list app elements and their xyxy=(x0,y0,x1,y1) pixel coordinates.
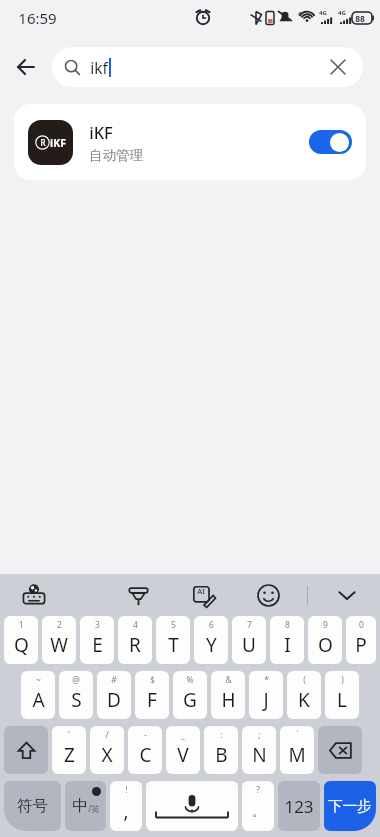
staticText: & xyxy=(225,674,232,686)
staticText: : xyxy=(220,729,223,741)
staticText: 4 xyxy=(133,619,138,631)
button[interactable]: ; xyxy=(242,726,276,774)
staticText: - xyxy=(144,729,147,741)
staticText: Q xyxy=(14,632,29,658)
button[interactable]: ) xyxy=(325,671,359,719)
staticText: ( xyxy=(303,674,306,686)
staticText: _ xyxy=(181,729,185,741)
button[interactable]: AI writing xyxy=(186,578,220,612)
staticText: J xyxy=(263,687,269,713)
button[interactable]: ~ xyxy=(21,671,55,719)
staticText: % xyxy=(186,674,194,686)
button[interactable]: ` xyxy=(280,726,314,774)
staticText: 3 xyxy=(95,619,100,631)
staticText: V xyxy=(177,742,189,768)
staticText: H xyxy=(221,687,236,713)
button[interactable]: ? xyxy=(242,781,274,831)
button[interactable]: ikf xyxy=(52,47,363,87)
staticText: 自动管理 xyxy=(89,147,143,164)
staticText: 123 xyxy=(284,795,314,818)
button[interactable]: Backspace xyxy=(318,726,362,774)
button[interactable]: - xyxy=(128,726,162,774)
staticText: T xyxy=(168,632,179,658)
button[interactable]: : xyxy=(204,726,238,774)
staticText: /英 xyxy=(88,803,100,815)
button[interactable]: R xyxy=(14,104,366,180)
button[interactable]: Theme xyxy=(121,578,155,612)
staticText: B xyxy=(215,742,228,768)
button[interactable]: ( xyxy=(287,671,321,719)
staticText: $ xyxy=(150,674,155,686)
button[interactable]: # xyxy=(97,671,131,719)
button[interactable]: Back xyxy=(0,41,52,93)
staticText: , xyxy=(123,798,129,824)
staticText: 下一步 xyxy=(328,797,372,815)
staticText: * xyxy=(264,674,269,686)
staticText: 符号 xyxy=(17,796,48,816)
staticText: N xyxy=(252,742,267,768)
staticText: F xyxy=(147,687,157,713)
button[interactable]: Shift xyxy=(4,726,48,774)
button[interactable]: 123 xyxy=(278,781,320,831)
button[interactable]: Input language xyxy=(18,579,50,611)
button[interactable]: ! xyxy=(110,781,142,831)
button[interactable]: 9 xyxy=(308,616,342,664)
button[interactable]: 0 xyxy=(346,616,376,664)
staticText: ; xyxy=(258,729,261,741)
button[interactable]: Clear text xyxy=(325,54,351,80)
button[interactable]: 6 xyxy=(194,616,228,664)
staticText: iKF xyxy=(50,136,66,150)
button[interactable]: 8 xyxy=(270,616,304,664)
staticText: A xyxy=(32,687,45,713)
staticText: ~ xyxy=(36,674,41,686)
button[interactable]: * xyxy=(249,671,283,719)
staticText: D xyxy=(107,687,121,713)
staticText: R xyxy=(40,137,46,148)
staticText: 4G xyxy=(338,9,346,17)
staticText: 4G xyxy=(319,9,327,17)
staticText: I xyxy=(284,632,291,658)
button[interactable]: 符号 xyxy=(4,781,61,831)
staticText: iKF xyxy=(89,121,113,143)
button[interactable]: Toggle auto manage xyxy=(309,130,352,154)
button[interactable]: / xyxy=(90,726,124,774)
staticText: 。 xyxy=(252,803,265,819)
staticText: 2 xyxy=(57,619,62,631)
button[interactable]: 3 xyxy=(80,616,114,664)
staticText: 6 xyxy=(209,619,214,631)
staticText: ! xyxy=(125,784,128,796)
button[interactable]: $ xyxy=(135,671,169,719)
staticText: K xyxy=(298,687,310,713)
staticText: L xyxy=(337,687,347,713)
button[interactable]: @ xyxy=(59,671,93,719)
button[interactable]: % xyxy=(173,671,207,719)
button[interactable]: Hide keyboard xyxy=(330,578,364,612)
button[interactable]: 2 xyxy=(42,616,76,664)
button[interactable]: 4 xyxy=(118,616,152,664)
button[interactable]: 7 xyxy=(232,616,266,664)
button[interactable]: ' xyxy=(52,726,86,774)
staticText: 16:59 xyxy=(18,8,57,28)
staticText: Z xyxy=(64,742,75,768)
button[interactable]: & xyxy=(211,671,245,719)
staticText: 9 xyxy=(323,619,328,631)
staticText: @ xyxy=(72,674,80,686)
button[interactable]: Space / voice input xyxy=(146,781,238,831)
staticText: # xyxy=(111,674,117,686)
staticText: G xyxy=(183,687,197,713)
staticText: 1 xyxy=(19,619,24,631)
staticText: C xyxy=(139,742,152,768)
staticText: 7 xyxy=(247,619,252,631)
staticText: 8 xyxy=(285,619,290,631)
staticText: E xyxy=(92,632,103,658)
button[interactable]: Emoji xyxy=(251,578,285,612)
button[interactable]: 1 xyxy=(4,616,38,664)
staticText: U xyxy=(242,632,256,658)
button[interactable]: 中 xyxy=(65,781,106,831)
button[interactable]: 下一步 xyxy=(324,781,376,831)
staticText: 88 xyxy=(355,13,365,25)
button[interactable]: _ xyxy=(166,726,200,774)
button[interactable]: 5 xyxy=(156,616,190,664)
staticText: M xyxy=(288,742,306,768)
staticText: W xyxy=(50,632,68,658)
